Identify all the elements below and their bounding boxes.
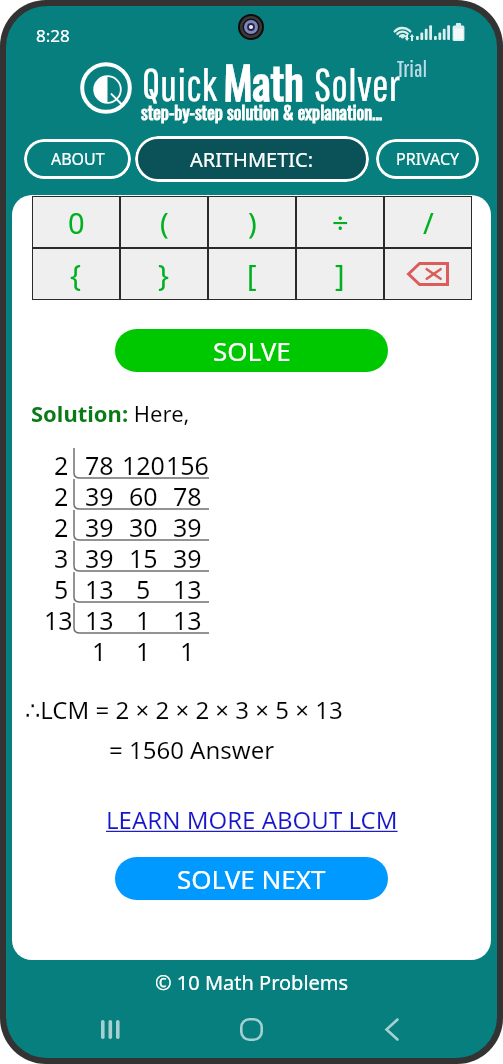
- button[interactable]: {: [33, 249, 119, 299]
- staticText: ARITHMETIC:: [190, 146, 314, 173]
- button[interactable]: LEARN MORE ABOUT LCM: [102, 799, 402, 840]
- staticText: 13: [85, 572, 114, 603]
- button[interactable]: (: [121, 197, 207, 247]
- staticText: © 10 Math Problems: [155, 969, 349, 996]
- staticText: ]: [335, 255, 345, 294]
- staticText: 1: [136, 603, 151, 634]
- staticText: 78: [85, 448, 114, 479]
- staticText: ABOUT: [51, 148, 105, 170]
- staticText: Trial: [397, 55, 428, 81]
- button[interactable]: [: [209, 249, 295, 299]
- button[interactable]: ÷: [297, 197, 383, 247]
- other: Backspace: [407, 262, 449, 286]
- button[interactable]: Home: [227, 1006, 275, 1052]
- staticText: 1: [180, 634, 195, 665]
- staticText: 13: [173, 572, 202, 603]
- staticText: ÷: [332, 203, 349, 242]
- staticText: 39: [85, 541, 114, 572]
- staticText: 3: [54, 541, 73, 572]
- button[interactable]: ABOUT: [24, 139, 131, 179]
- staticText: 1: [92, 634, 107, 665]
- staticText: 60: [129, 479, 158, 510]
- staticText: {: [70, 255, 82, 294]
- button[interactable]: Back: [368, 1006, 416, 1052]
- staticText: /: [423, 203, 434, 242]
- button[interactable]: ]: [297, 249, 383, 299]
- staticText: 13: [85, 603, 114, 634]
- staticText: 5: [54, 572, 73, 603]
- staticText: PRIVACY: [396, 148, 460, 170]
- staticText: 39: [85, 479, 114, 510]
- staticText: 2: [54, 510, 73, 541]
- staticText: 120: [122, 448, 165, 479]
- staticText: 1: [136, 634, 151, 665]
- staticText: Quick Math Solver: [142, 49, 400, 114]
- staticText: 39: [173, 541, 202, 572]
- staticText: ∴LCM = 2 × 2 × 2 × 3 × 5 × 13: [25, 693, 343, 726]
- staticText: }: [158, 255, 170, 294]
- staticText: 156: [166, 448, 209, 479]
- staticText: 0: [68, 203, 85, 242]
- staticText: 13: [173, 603, 202, 634]
- staticText: 39: [173, 510, 202, 541]
- staticText: 30: [129, 510, 158, 541]
- button[interactable]: ): [209, 197, 295, 247]
- button[interactable]: 0: [33, 197, 119, 247]
- staticText: 8:28: [36, 24, 70, 47]
- staticText: 78: [173, 479, 202, 510]
- button[interactable]: SOLVE: [115, 329, 388, 372]
- staticText: = 1560 Answer: [109, 733, 275, 766]
- staticText: SOLVE NEXT: [177, 861, 326, 896]
- staticText: SOLVE: [213, 333, 291, 368]
- staticText: 5: [136, 572, 151, 603]
- button[interactable]: /: [385, 197, 471, 247]
- button[interactable]: SOLVE NEXT: [115, 857, 388, 900]
- button[interactable]: PRIVACY: [376, 139, 479, 179]
- staticText: 13: [44, 603, 73, 634]
- button[interactable]: ARITHMETIC:: [135, 136, 369, 182]
- button[interactable]: }: [121, 249, 207, 299]
- staticText: (: [160, 203, 169, 242]
- staticText: 2: [54, 448, 73, 479]
- staticText: 15: [129, 541, 158, 572]
- staticText: Solution: Here,: [31, 398, 190, 428]
- button[interactable]: Recents: [87, 1006, 135, 1052]
- staticText: [: [247, 255, 257, 294]
- staticText: step-by-step solution & explanation...: [141, 99, 383, 126]
- staticText: ): [248, 203, 257, 242]
- button[interactable]: Backspace: [385, 249, 471, 299]
- staticText: 2: [54, 479, 73, 510]
- staticText: 39: [85, 510, 114, 541]
